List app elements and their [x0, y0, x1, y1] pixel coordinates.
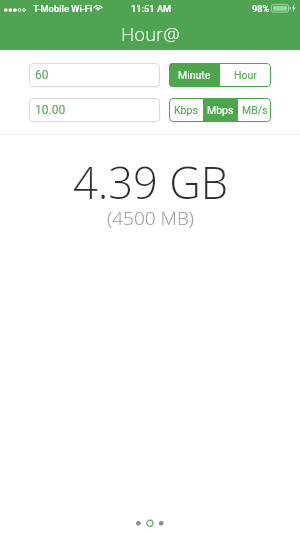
staticText: Minute — [178, 69, 211, 81]
staticText: Kbps — [174, 104, 198, 116]
staticText: 10.00 — [35, 103, 66, 117]
button[interactable]: 60 — [29, 63, 160, 87]
staticText: 11:51 AM — [131, 3, 172, 14]
button[interactable]: 10.00 — [29, 98, 160, 122]
staticText: 98% — [252, 3, 270, 14]
staticText: Hour — [234, 69, 257, 81]
staticText: Mbps — [207, 104, 234, 116]
staticText: 4.39 GB — [73, 153, 228, 212]
staticText: (4500 MB) — [107, 205, 194, 231]
other: Page indicator — [130, 514, 170, 532]
staticText: 60 — [35, 68, 49, 82]
button[interactable]: MB/s — [238, 98, 271, 122]
staticText: Hour@ — [121, 21, 180, 46]
button[interactable]: Hour — [220, 63, 271, 87]
button[interactable]: Minute — [169, 63, 219, 87]
button[interactable]: Kbps — [169, 98, 203, 122]
staticText: T-Mobile Wi-Fi — [33, 3, 93, 14]
button[interactable]: Mbps — [204, 98, 237, 122]
staticText: MB/s — [242, 104, 268, 116]
